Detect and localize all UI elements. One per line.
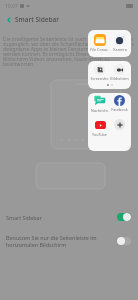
staticText: Die intelligente Seitenleiste ist auch a… [3, 36, 135, 67]
button[interactable]: Toggle off [117, 237, 131, 245]
button[interactable]: Nachricht. [90, 95, 109, 113]
staticText: Screenshot [90, 76, 109, 81]
button[interactable]: File Conac. [90, 34, 109, 52]
button[interactable]: Kamera [110, 34, 129, 52]
staticText: Kamera [113, 47, 127, 52]
staticText: horizontalen Bildschirm [6, 241, 67, 248]
button[interactable]: Back [2, 13, 15, 26]
staticText: 10:07 [5, 3, 18, 10]
button[interactable]: Benutzen Sie nur die Seitenleiste im [0, 228, 138, 254]
button[interactable]: Smart Sidebar [0, 206, 138, 228]
staticText: Smart Sidebar [6, 214, 42, 221]
staticText: Bildschirm. [110, 76, 129, 81]
button[interactable]: YouTube [90, 119, 109, 137]
button[interactable]: Bildschirm. [110, 64, 129, 81]
button[interactable]: Screenshot [90, 64, 109, 81]
staticText: Smart Sidebar [15, 15, 59, 24]
staticText: File Conac. [90, 47, 109, 52]
staticText: Benutzen Sie nur die Seitenleiste im [6, 234, 97, 241]
button[interactable]: Toggle on [117, 213, 131, 221]
button[interactable]: Facebook [110, 95, 129, 112]
staticText: Facebook [111, 107, 128, 112]
staticText: Nachricht. [91, 108, 109, 113]
staticText: YouTube [92, 132, 107, 137]
button[interactable]: Add shortcut [110, 119, 129, 131]
